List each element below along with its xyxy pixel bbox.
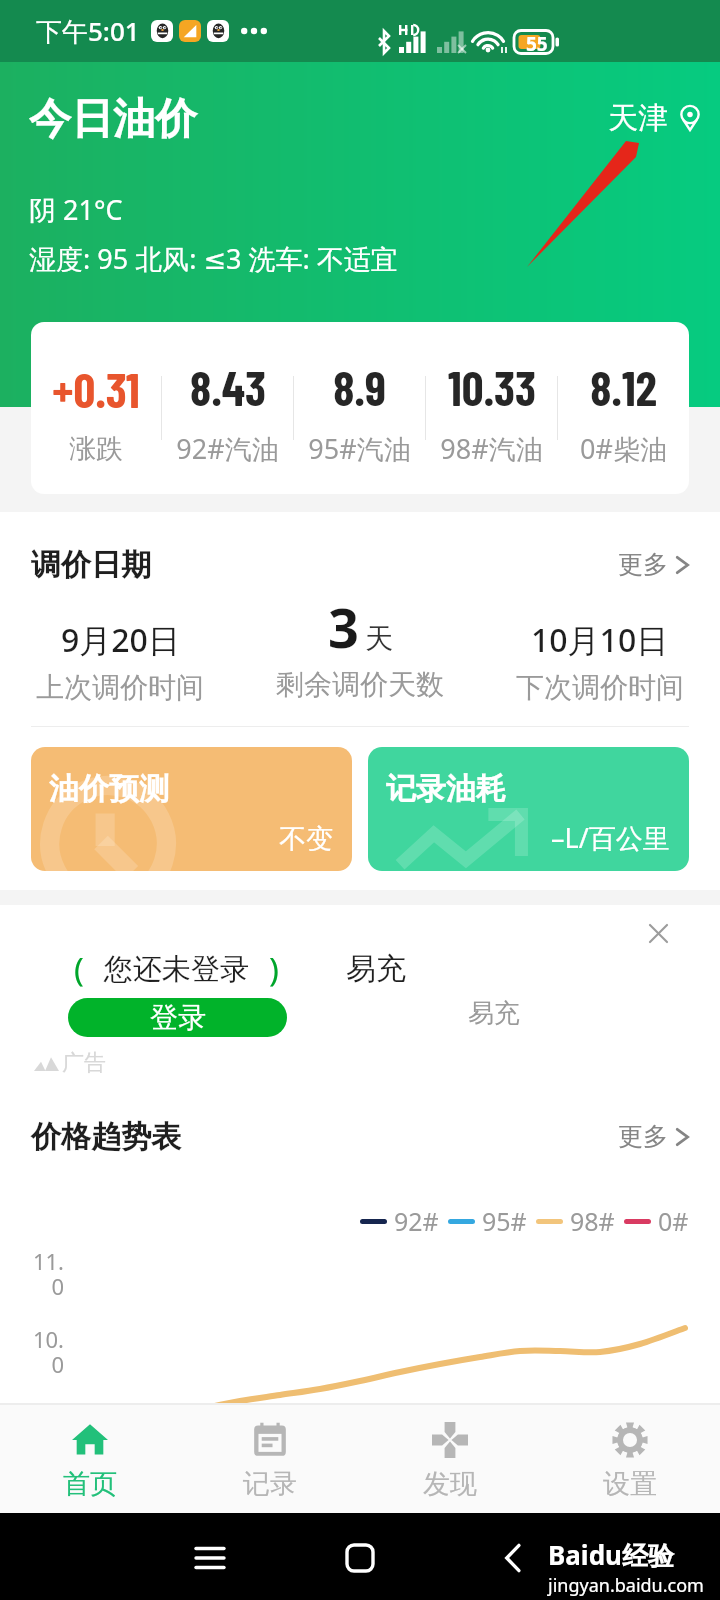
button[interactable]: 3	[240, 618, 480, 727]
button[interactable]: 更多	[618, 1121, 689, 1152]
staticText: –L/百公里	[551, 819, 670, 856]
staticText: 8.43	[190, 358, 266, 416]
staticText: 油价预测	[49, 770, 169, 808]
staticText: 广告	[62, 1049, 106, 1077]
staticText: 易充	[346, 950, 406, 988]
button[interactable]: 8.12	[558, 322, 689, 494]
staticText: 下午5:01	[36, 13, 140, 49]
staticText: 95#	[482, 1204, 527, 1238]
button[interactable]: 9月20日	[0, 618, 240, 705]
button[interactable]: 记录	[180, 1405, 360, 1513]
button[interactable]: 95#	[448, 1204, 527, 1238]
button[interactable]: Back	[488, 1534, 536, 1582]
staticText: 剩余调价天数	[276, 667, 444, 702]
staticText: 55	[526, 31, 548, 57]
staticText: 天	[365, 621, 393, 656]
staticText: 调价日期	[31, 546, 151, 584]
staticText: 更多	[618, 549, 668, 580]
staticText: 92#汽油	[176, 430, 279, 467]
staticText: jingyan.baidu.com	[548, 1573, 704, 1598]
button[interactable]: 油价预测	[31, 747, 352, 871]
staticText: 11. 0	[24, 1246, 64, 1302]
staticText: 不变	[279, 822, 333, 856]
button[interactable]: +0.31	[31, 322, 161, 494]
staticText: 下次调价时间	[516, 670, 684, 705]
staticText: 发现	[423, 1467, 477, 1501]
staticText: 9月20日	[61, 618, 180, 662]
staticText: +0.31	[52, 360, 140, 418]
button[interactable]: 10.33	[426, 322, 557, 494]
staticText: 涨跌	[69, 432, 123, 466]
button[interactable]: Recents	[186, 1534, 234, 1582]
staticText: 天津	[608, 99, 668, 137]
staticText: 更多	[618, 1121, 668, 1152]
button[interactable]: 0#	[624, 1204, 689, 1238]
button[interactable]: 关闭广告	[634, 909, 682, 957]
button[interactable]: 8.43	[162, 322, 293, 494]
staticText: 登录	[150, 1000, 206, 1035]
staticText: 98#	[570, 1204, 615, 1238]
staticText: 10.33	[448, 358, 536, 416]
button[interactable]: Home	[336, 1534, 384, 1582]
staticText: 设置	[603, 1467, 657, 1501]
staticText: 今日油价	[29, 93, 197, 146]
staticText: Baidu经验	[548, 1537, 674, 1573]
staticText: 上次调价时间	[36, 670, 204, 705]
staticText: 0#	[658, 1204, 689, 1238]
button[interactable]: 更多	[618, 549, 689, 580]
button[interactable]: 天津	[608, 99, 702, 137]
staticText: (	[74, 947, 84, 992]
button[interactable]: 首页	[0, 1405, 180, 1513]
staticText: 3	[328, 590, 359, 664]
staticText: 92#	[394, 1204, 439, 1238]
staticText: 您还未登录	[104, 951, 249, 988]
button[interactable]: 设置	[540, 1405, 720, 1513]
button[interactable]: 10月10日	[480, 618, 720, 705]
staticText: 8.12	[590, 358, 657, 416]
staticText: 阴 21°C	[29, 191, 123, 228]
staticText: )	[269, 947, 279, 992]
staticText: 95#汽油	[308, 430, 411, 467]
button[interactable]: 登录	[68, 998, 287, 1037]
staticText: 记录	[243, 1467, 297, 1501]
staticText: 98#汽油	[440, 430, 543, 467]
button[interactable]: 8.9	[294, 322, 425, 494]
staticText: 0#柴油	[580, 430, 667, 467]
staticText: 8.9	[333, 358, 386, 416]
staticText: 10. 0	[24, 1324, 64, 1380]
staticText: 易充	[468, 997, 520, 1030]
button[interactable]: 92#	[360, 1204, 439, 1238]
staticText: 湿度: 95 北风: ≤3 洗车: 不适宜	[29, 240, 398, 277]
button[interactable]: 98#	[536, 1204, 615, 1238]
staticText: 价格趋势表	[31, 1118, 181, 1156]
button[interactable]: 记录油耗	[368, 747, 689, 871]
button[interactable]: 发现	[360, 1405, 540, 1513]
staticText: 记录油耗	[386, 770, 506, 808]
staticText: 10月10日	[531, 618, 669, 662]
staticText: 首页	[63, 1467, 117, 1501]
